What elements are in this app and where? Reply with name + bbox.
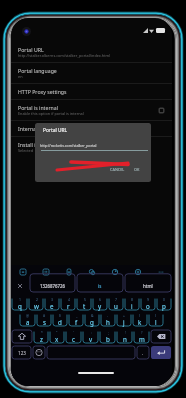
button[interactable]: Internal portal address (11, 121, 172, 136)
button[interactable]: " (50, 330, 64, 343)
staticText: z (40, 335, 43, 343)
staticText: # (43, 313, 46, 318)
staticText: 5 (84, 297, 86, 302)
staticText: 9 (147, 297, 149, 302)
staticText: Portal URL (43, 127, 68, 134)
button[interactable]: - (101, 313, 115, 326)
staticText: _ (76, 313, 78, 318)
staticText: w (34, 302, 39, 310)
staticText: 1326876726 (40, 283, 66, 289)
button[interactable]: Stickers (34, 265, 57, 279)
staticText: j (123, 318, 125, 326)
staticText: r (67, 302, 70, 310)
staticText: + (123, 313, 125, 318)
staticText: p (162, 302, 166, 310)
staticText: OK (134, 167, 140, 172)
button[interactable]: Portal language (11, 63, 172, 83)
button[interactable]: More suggestions (11, 279, 29, 292)
button[interactable]: Portal URL (11, 42, 172, 62)
button[interactable]: 9 (141, 297, 155, 310)
button[interactable]: 0 (157, 297, 171, 310)
staticText: is (98, 283, 102, 289)
button[interactable]: : (83, 330, 98, 343)
staticText: 123 (18, 350, 26, 356)
button[interactable]: + (117, 313, 131, 326)
staticText: s (43, 318, 46, 326)
button[interactable]: Backspace (151, 330, 171, 343)
staticText: 6 (99, 297, 101, 302)
staticText: " (56, 330, 58, 335)
button[interactable]: Screenshot (57, 265, 80, 279)
staticText: 2 (36, 297, 38, 302)
staticText: CANCEL (110, 167, 125, 172)
button[interactable]: Shift (12, 330, 32, 343)
button[interactable]: Home (78, 372, 114, 374)
button[interactable]: ! (117, 330, 132, 343)
staticText: v (89, 335, 93, 343)
button[interactable]: 1326876726 (30, 279, 75, 292)
button[interactable]: 5 (77, 297, 91, 310)
staticText: * (41, 330, 43, 335)
button[interactable]: @ (20, 313, 35, 326)
button[interactable]: More (149, 265, 172, 279)
button[interactable]: 4 (61, 297, 75, 310)
staticText: html (143, 283, 153, 289)
staticText: i (131, 302, 133, 310)
button[interactable]: html (125, 279, 171, 292)
staticText: b (106, 335, 110, 343)
button[interactable]: OK (132, 165, 142, 174)
staticText: Install in (18, 141, 39, 148)
button[interactable]: ) (149, 313, 163, 326)
button[interactable]: & (85, 313, 99, 326)
staticText: . (142, 350, 144, 356)
button[interactable]: Space (47, 346, 135, 359)
staticText: e (50, 302, 54, 310)
button[interactable]: Translate (80, 265, 103, 279)
staticText: 3 (51, 297, 53, 302)
button[interactable]: 7 (109, 297, 123, 310)
staticText: @ (26, 313, 30, 318)
button[interactable]: 8 (125, 297, 139, 310)
staticText: h (106, 318, 110, 326)
staticText: f (75, 318, 78, 326)
staticText: en (18, 74, 23, 79)
button[interactable]: Install in (11, 137, 172, 157)
button[interactable]: Enter (151, 346, 171, 359)
button[interactable]: ; (100, 330, 115, 343)
button[interactable]: ' (66, 330, 81, 343)
button[interactable]: ( (133, 313, 147, 326)
staticText: HTTP Proxy settings (18, 88, 67, 95)
staticText: 4 (68, 297, 70, 302)
button[interactable]: # (37, 313, 51, 326)
button[interactable]: _ (69, 313, 83, 326)
button[interactable]: 1 (12, 297, 27, 310)
button[interactable]: Clipboard (11, 265, 34, 279)
button[interactable]: Emoji (33, 346, 45, 359)
staticText: t (83, 302, 86, 310)
button[interactable]: 3 (45, 297, 59, 310)
staticText: ( (139, 313, 141, 318)
button[interactable]: Portal is internal (11, 100, 172, 120)
button[interactable]: Theme (103, 265, 126, 279)
button[interactable]: Settings (126, 265, 149, 279)
button[interactable]: 2 (29, 297, 43, 310)
button[interactable]: is (77, 279, 123, 292)
button[interactable]: * (34, 330, 48, 343)
staticText: Portal language (18, 67, 57, 74)
button[interactable]: . (137, 346, 149, 359)
button[interactable]: CANCEL (108, 165, 127, 174)
staticText: l (155, 318, 157, 326)
staticText: 8 (131, 297, 133, 302)
button[interactable]: $ (53, 313, 67, 326)
staticText: ? (141, 330, 143, 335)
button[interactable]: 123 (12, 346, 31, 359)
staticText: ' (73, 330, 74, 335)
staticText: & (91, 313, 94, 318)
staticText: 7 (115, 297, 117, 302)
button[interactable]: ? (134, 330, 149, 343)
button[interactable]: HTTP Proxy settings (11, 84, 172, 99)
staticText: m (139, 335, 145, 343)
staticText: y (98, 302, 102, 310)
staticText: http://rocketiv.com/stalker_portal (40, 143, 97, 148)
button[interactable]: 6 (93, 297, 107, 310)
